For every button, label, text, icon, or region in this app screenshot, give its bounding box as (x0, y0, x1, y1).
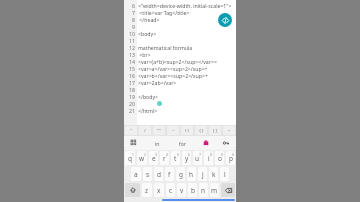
staticText: o (218, 154, 222, 163)
button[interactable]: l (220, 167, 229, 181)
staticText: <var>2ab</var> (138, 79, 177, 86)
staticText: g (179, 170, 183, 179)
button[interactable]: Enter (162, 199, 235, 201)
staticText: w (139, 154, 145, 163)
staticText: 21 (129, 107, 135, 114)
staticText: 0 (232, 152, 234, 157)
staticText: 18 (129, 86, 135, 93)
button[interactable]: Password (216, 136, 236, 150)
button[interactable]: c (166, 183, 175, 197)
staticText: m (211, 186, 218, 195)
button[interactable]: Run code (218, 13, 232, 27)
button[interactable]: s (143, 167, 152, 181)
staticText: r (163, 154, 166, 163)
button[interactable]: q (125, 151, 135, 165)
staticText: k (212, 170, 216, 179)
staticText: 8 (132, 16, 135, 23)
button[interactable]: v (177, 183, 186, 197)
staticText: 20 (129, 100, 135, 107)
staticText: f (168, 170, 171, 179)
button[interactable]: '' (125, 126, 137, 135)
staticText: / (144, 128, 146, 134)
button[interactable]: p (226, 151, 235, 165)
button[interactable]: w (137, 151, 147, 165)
staticText: h (189, 170, 194, 179)
button[interactable]: n (199, 183, 208, 197)
staticText: l (224, 170, 226, 179)
button[interactable]: r (160, 151, 169, 165)
button[interactable]: z (142, 183, 152, 197)
button[interactable]: [ ] (209, 126, 221, 135)
button[interactable]: "" (153, 126, 165, 135)
staticText: v (180, 186, 184, 195)
staticText: 8 (210, 152, 212, 157)
button[interactable]: b (188, 183, 197, 197)
button[interactable]: x (154, 183, 164, 197)
button[interactable]: / (139, 126, 151, 135)
button[interactable]: Shift (125, 183, 140, 197)
staticText: 9 (132, 23, 135, 30)
staticText: 13 (129, 51, 135, 58)
staticText: z (145, 186, 149, 195)
staticText: </head> (138, 16, 160, 23)
staticText: <"width=device-width, initial-scale=1"> (138, 2, 232, 9)
button[interactable]: in (144, 136, 170, 150)
button[interactable]: Clipboard (196, 136, 216, 150)
staticText: mathematical formula (138, 44, 193, 51)
button[interactable]: i (204, 151, 213, 165)
button[interactable]: j (198, 167, 207, 181)
staticText: 6 (188, 152, 190, 157)
button[interactable]: k (209, 167, 218, 181)
button[interactable]: d (154, 167, 163, 181)
staticText: 5 (177, 152, 179, 157)
staticText: c (169, 186, 173, 195)
staticText: ( ) (185, 128, 189, 134)
button[interactable]: a (131, 167, 141, 181)
staticText: b (191, 186, 195, 195)
button[interactable]: u (193, 151, 202, 165)
staticText: [ ] (213, 128, 217, 134)
button[interactable]: m (210, 183, 219, 197)
staticText: 19 (129, 93, 135, 100)
staticText: 7 (199, 152, 201, 157)
staticText: for (179, 140, 187, 147)
button[interactable]: h (187, 167, 196, 181)
staticText: <title>var Tag</title> (138, 9, 190, 16)
staticText: <br> (138, 51, 151, 58)
button[interactable]: y (182, 151, 191, 165)
staticText: 12 (129, 44, 135, 51)
staticText: 10 (129, 30, 135, 37)
staticText: x (157, 186, 161, 195)
staticText: a (134, 170, 138, 179)
staticText: • (228, 128, 230, 134)
staticText: <var>a</var><sup>2</sup>+ (138, 65, 208, 72)
staticText: </html> (138, 107, 158, 114)
staticText: <body> (138, 30, 157, 37)
button[interactable]: o (215, 151, 224, 165)
staticText: q (128, 154, 132, 163)
button[interactable]: Backspace (221, 183, 235, 197)
staticText: j (202, 170, 204, 179)
staticText: { } (199, 128, 204, 134)
button[interactable]: g (176, 167, 185, 181)
button[interactable]: for (170, 136, 196, 150)
staticText: 17 (129, 79, 135, 86)
staticText: e (152, 154, 156, 163)
staticText: n (201, 186, 206, 195)
button[interactable]: ~ (167, 126, 179, 135)
staticText: t (174, 154, 177, 163)
staticText: d (157, 170, 161, 179)
staticText: "" (157, 128, 161, 134)
staticText: in (155, 140, 160, 147)
button[interactable]: Emoji (124, 136, 144, 150)
button[interactable]: ( ) (181, 126, 193, 135)
staticText: 2 (144, 152, 146, 157)
button[interactable]: • (223, 126, 235, 135)
button[interactable]: { } (195, 126, 207, 135)
staticText: 9 (221, 152, 223, 157)
staticText: 6 (132, 2, 135, 9)
button[interactable]: f (165, 167, 174, 181)
staticText: 4 (166, 152, 168, 157)
button[interactable]: t (171, 151, 180, 165)
button[interactable]: e (149, 151, 158, 165)
